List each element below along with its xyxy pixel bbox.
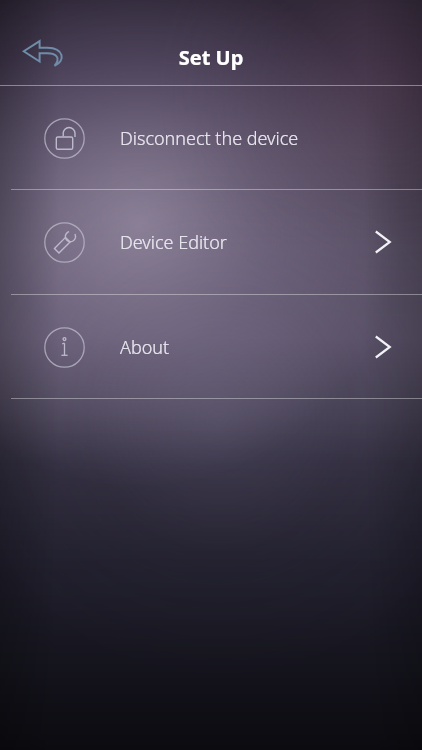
- staticText: Device Editor: [120, 230, 227, 255]
- staticText: Disconnect the device: [120, 126, 299, 151]
- button[interactable]: Disconnect the device: [0, 86, 422, 190]
- button[interactable]: Device Editor: [0, 190, 422, 294]
- staticText: Set Up: [0, 44, 422, 71]
- button[interactable]: About: [0, 295, 422, 399]
- button[interactable]: Back: [14, 33, 74, 75]
- staticText: About: [120, 335, 170, 360]
